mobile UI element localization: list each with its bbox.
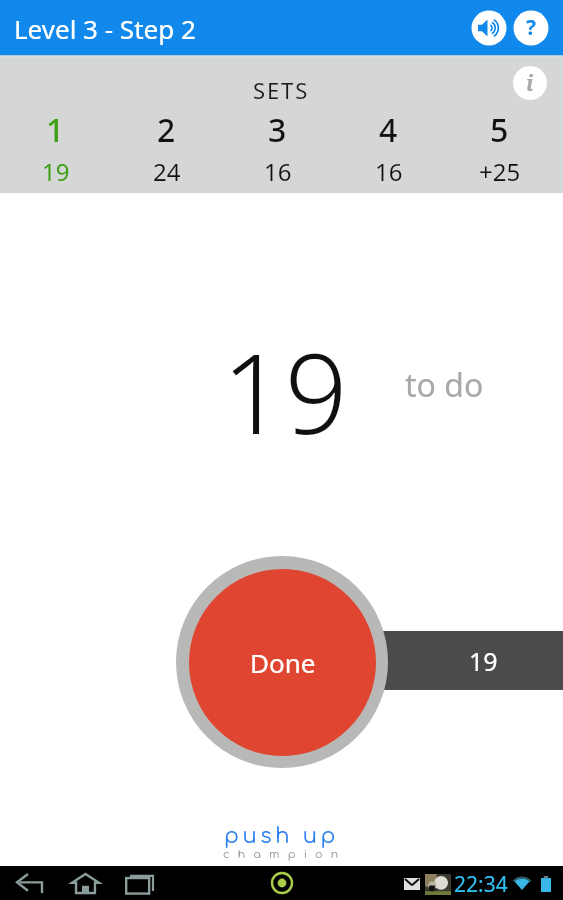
button[interactable]: 19: [0, 155, 111, 183]
button[interactable]: +25: [444, 155, 555, 183]
staticText: 16: [264, 155, 292, 183]
button[interactable]: Back: [4, 866, 54, 900]
staticText: 22:34: [454, 870, 508, 899]
button[interactable]: 16: [222, 155, 333, 183]
staticText: to do: [405, 363, 484, 407]
staticText: 1: [46, 108, 65, 142]
button[interactable]: 5: [444, 108, 555, 142]
staticText: +25: [479, 155, 521, 183]
button[interactable]: Sound: [467, 6, 511, 50]
staticText: 2: [157, 108, 176, 142]
staticText: i: [526, 69, 534, 98]
staticText: 24: [153, 155, 181, 183]
staticText: SETS: [253, 75, 310, 105]
button[interactable]: Done: [176, 556, 388, 768]
staticText: 3: [268, 108, 287, 142]
button[interactable]: 19: [200, 631, 563, 690]
staticText: Level 3 - Step 2: [14, 11, 196, 46]
staticText: champion: [223, 848, 347, 860]
button[interactable]: Home: [60, 866, 110, 900]
staticText: 19: [222, 316, 348, 466]
staticText: push up: [224, 824, 340, 847]
button[interactable]: Info: [512, 65, 548, 101]
staticText: 4: [379, 108, 398, 142]
button[interactable]: Assist: [265, 866, 299, 900]
staticText: Done: [250, 645, 316, 680]
button[interactable]: Recents: [114, 866, 164, 900]
staticText: 16: [375, 155, 403, 183]
staticText: 19: [469, 644, 498, 678]
button[interactable]: Help: [509, 6, 553, 50]
button[interactable]: 3: [222, 108, 333, 142]
button[interactable]: 24: [111, 155, 222, 183]
button[interactable]: 2: [111, 108, 222, 142]
staticText: 19: [42, 155, 70, 183]
staticText: 5: [490, 108, 509, 142]
button[interactable]: 4: [333, 108, 444, 142]
button[interactable]: 16: [333, 155, 444, 183]
button[interactable]: 1: [0, 108, 111, 142]
staticText: ?: [526, 13, 537, 42]
